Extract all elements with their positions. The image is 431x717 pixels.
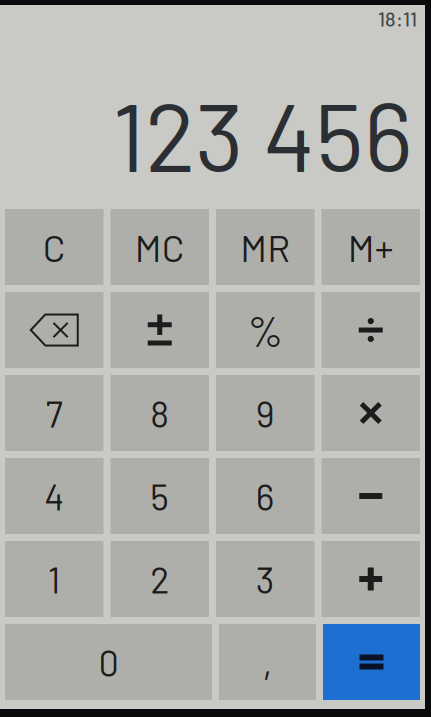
staticText: % [247, 304, 283, 356]
staticText: 0 [98, 640, 118, 684]
staticText: C [43, 225, 66, 269]
button[interactable]: 1 [5, 541, 103, 617]
button[interactable]: 5 [110, 458, 209, 534]
staticText: 9 [256, 391, 275, 435]
button[interactable]: C [5, 209, 103, 285]
button[interactable]: Plus [321, 541, 420, 617]
button[interactable]: 9 [216, 375, 314, 451]
staticText: MC [135, 225, 185, 269]
button[interactable]: Minus [321, 458, 420, 534]
button[interactable]: 4 [5, 458, 103, 534]
button[interactable]: Multiply [321, 375, 420, 451]
button[interactable]: , [219, 624, 316, 700]
staticText: 8 [150, 391, 169, 435]
staticText: 2 [150, 557, 169, 601]
button[interactable]: 3 [216, 541, 314, 617]
button[interactable]: M+ [321, 209, 420, 285]
button[interactable]: Equals [323, 624, 420, 700]
button[interactable]: MC [110, 209, 209, 285]
button[interactable]: 6 [216, 458, 314, 534]
button[interactable]: Divide [321, 292, 420, 368]
staticText: 3 [256, 557, 275, 601]
staticText: 6 [256, 474, 275, 518]
staticText: 5 [150, 474, 169, 518]
staticText: 18:11 [378, 6, 417, 30]
staticText: MR [240, 225, 290, 269]
button[interactable]: Backspace [5, 292, 103, 368]
staticText: M+ [348, 225, 394, 269]
button[interactable]: 7 [5, 375, 103, 451]
staticText: 4 [44, 474, 64, 518]
staticText: 123 456 [112, 77, 413, 191]
button[interactable]: % [216, 292, 314, 368]
staticText: 7 [46, 391, 63, 435]
staticText: 1 [48, 557, 61, 601]
button[interactable]: 8 [110, 375, 209, 451]
button[interactable]: Plus or minus [110, 292, 209, 368]
button[interactable]: MR [216, 209, 314, 285]
button[interactable]: 0 [5, 624, 212, 700]
staticText: , [262, 640, 272, 684]
button[interactable]: 2 [110, 541, 209, 617]
